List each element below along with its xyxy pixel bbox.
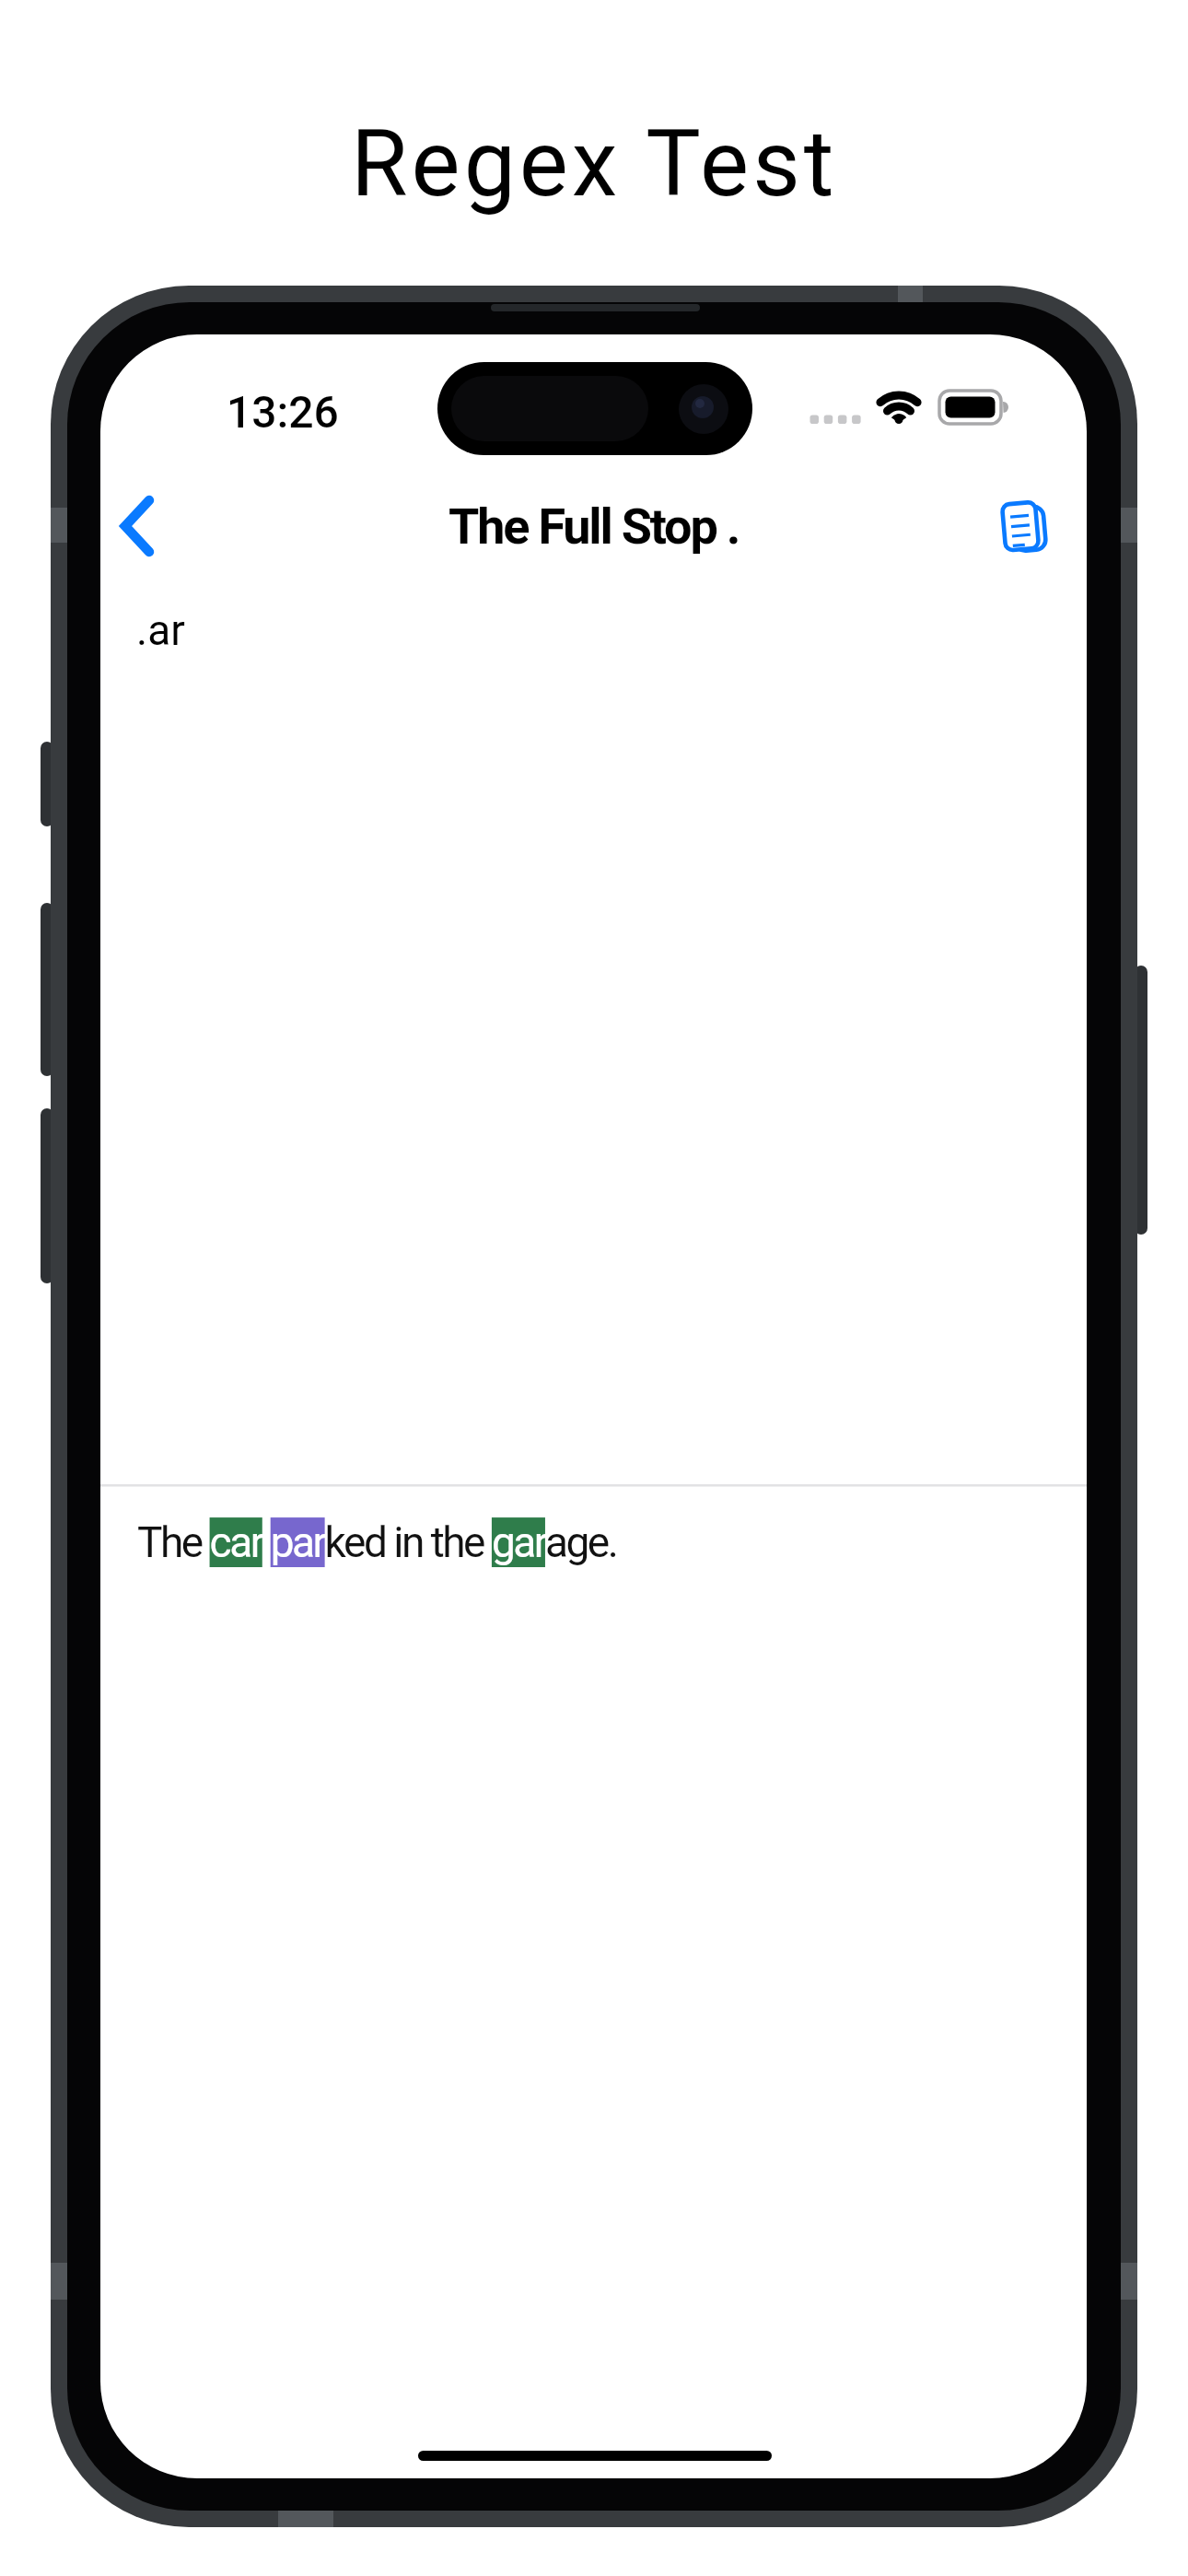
button[interactable] — [993, 492, 1054, 562]
staticText: .ar — [136, 605, 185, 655]
staticText: 13:26 — [227, 386, 339, 438]
staticText: Regex Test — [351, 110, 838, 217]
button[interactable] — [111, 486, 166, 566]
button[interactable]: .ar — [136, 605, 1039, 664]
button[interactable]: The car parked in the garage. — [137, 1517, 617, 1567]
staticText: The car parked in the garage. — [137, 1517, 617, 1567]
staticText: The Full Stop . — [448, 498, 740, 556]
